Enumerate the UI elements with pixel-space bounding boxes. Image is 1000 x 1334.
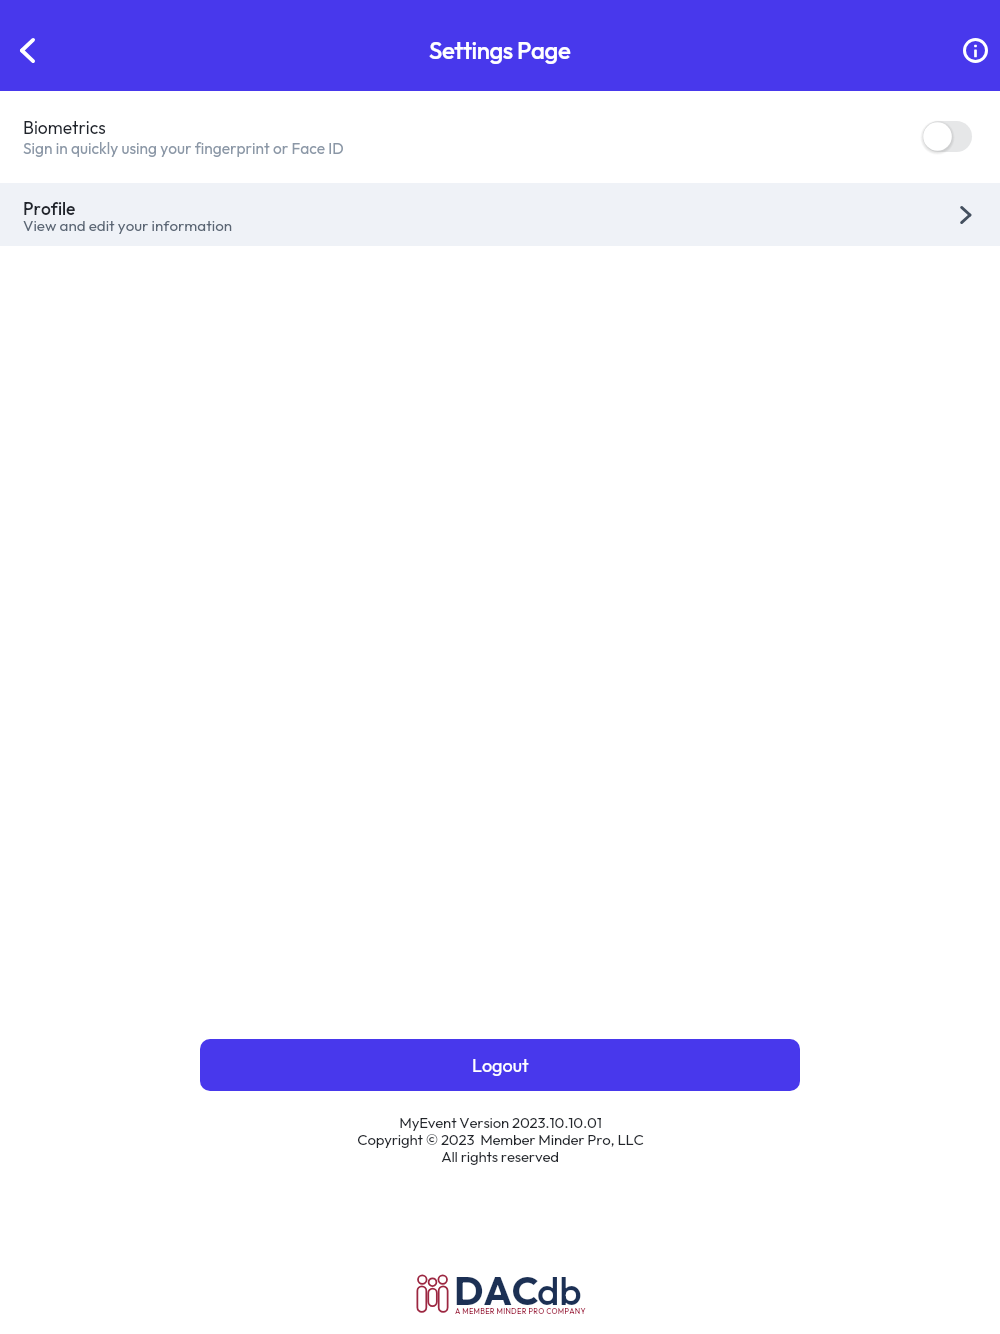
staticText: All rights reserved <box>441 1147 559 1166</box>
staticText: A MEMBER MINDER PRO COMPANY <box>455 1306 586 1316</box>
button[interactable]: Toggle biometrics <box>916 112 978 162</box>
button[interactable]: Back <box>0 6 54 86</box>
staticText: DAC <box>454 1266 539 1315</box>
staticText: MyEvent Version 2023.10.10.01 <box>399 1113 602 1132</box>
staticText: Biometrics <box>23 116 106 138</box>
button[interactable]: Logout <box>200 1039 800 1091</box>
staticText: Profile <box>23 197 76 219</box>
staticText: Settings Page <box>429 35 571 65</box>
staticText: Copyright © 2023 Member Minder Pro, LLC <box>357 1130 644 1149</box>
staticText: View and edit your information <box>23 216 233 235</box>
button[interactable]: Information <box>946 6 1000 86</box>
staticText: Sign in quickly using your fingerprint o… <box>23 138 344 158</box>
staticText: Logout <box>472 1054 529 1077</box>
staticText: db <box>537 1266 582 1315</box>
button[interactable]: Profile <box>0 183 1000 246</box>
button[interactable]: Biometrics <box>0 91 1000 183</box>
